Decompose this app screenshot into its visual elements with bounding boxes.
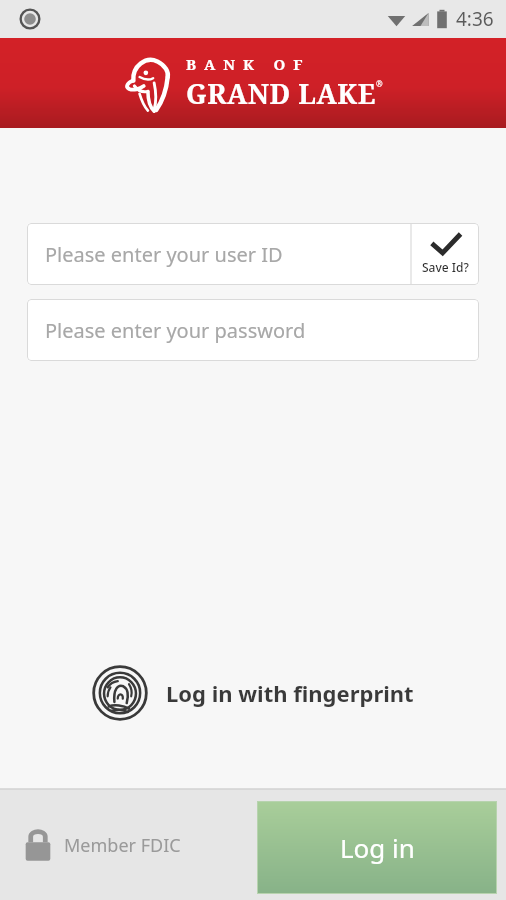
button[interactable]: Save Id xyxy=(411,223,479,285)
button[interactable]: Member FDIC xyxy=(24,828,181,862)
staticText: B A N K O F xyxy=(186,54,305,74)
button[interactable]: Please enter your user ID xyxy=(27,223,411,285)
staticText: ® xyxy=(376,78,383,89)
button[interactable]: Please enter your password xyxy=(27,299,479,361)
staticText: Save Id? xyxy=(422,259,469,275)
staticText: Log in with fingerprint xyxy=(166,678,414,708)
button[interactable]: Log in xyxy=(257,801,497,894)
staticText: Please enter your password xyxy=(45,317,306,344)
staticText: Member FDIC xyxy=(64,833,181,858)
staticText: GRAND LAKE xyxy=(186,75,376,112)
staticText: Please enter your user ID xyxy=(45,241,283,268)
staticText: 4:36 xyxy=(456,6,494,32)
staticText: Log in xyxy=(340,830,415,865)
button[interactable]: Log in with fingerprint xyxy=(0,665,506,721)
